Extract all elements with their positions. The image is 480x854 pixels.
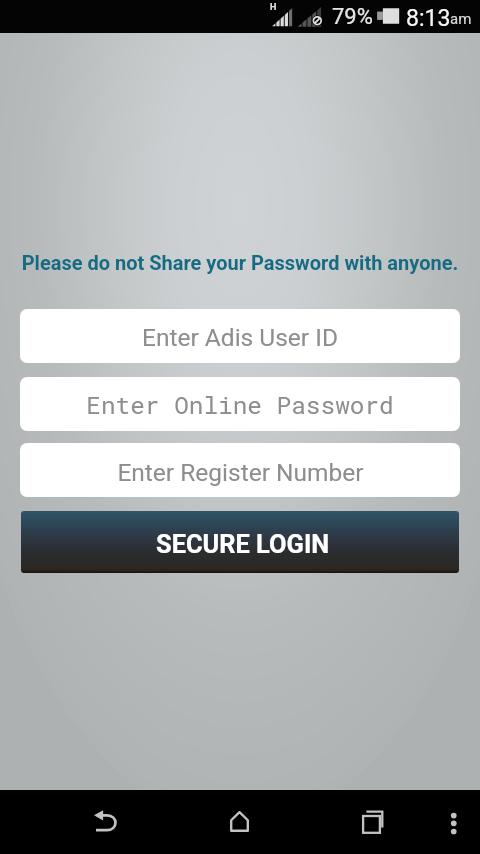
button[interactable]: Enter Online Password: [20, 377, 460, 431]
staticText: 8:13: [406, 5, 451, 32]
staticText: am: [450, 10, 472, 28]
button[interactable]: Enter Adis User ID: [20, 309, 460, 363]
button[interactable]: SECURE LOGIN: [21, 511, 459, 573]
staticText: Please do not Share your Password with a…: [0, 251, 480, 274]
staticText: Enter Adis User ID: [142, 323, 338, 352]
button[interactable]: Recent apps: [343, 790, 403, 854]
button[interactable]: More options: [434, 790, 474, 854]
staticText: Enter Register Number: [117, 458, 364, 487]
staticText: H: [270, 2, 277, 13]
button[interactable]: Home: [210, 790, 270, 854]
staticText: 79%: [332, 4, 373, 30]
staticText: Enter Online Password: [86, 388, 394, 420]
staticText: SECURE LOGIN: [156, 529, 330, 559]
button[interactable]: Enter Register Number: [20, 443, 460, 497]
button[interactable]: Back: [76, 790, 136, 854]
